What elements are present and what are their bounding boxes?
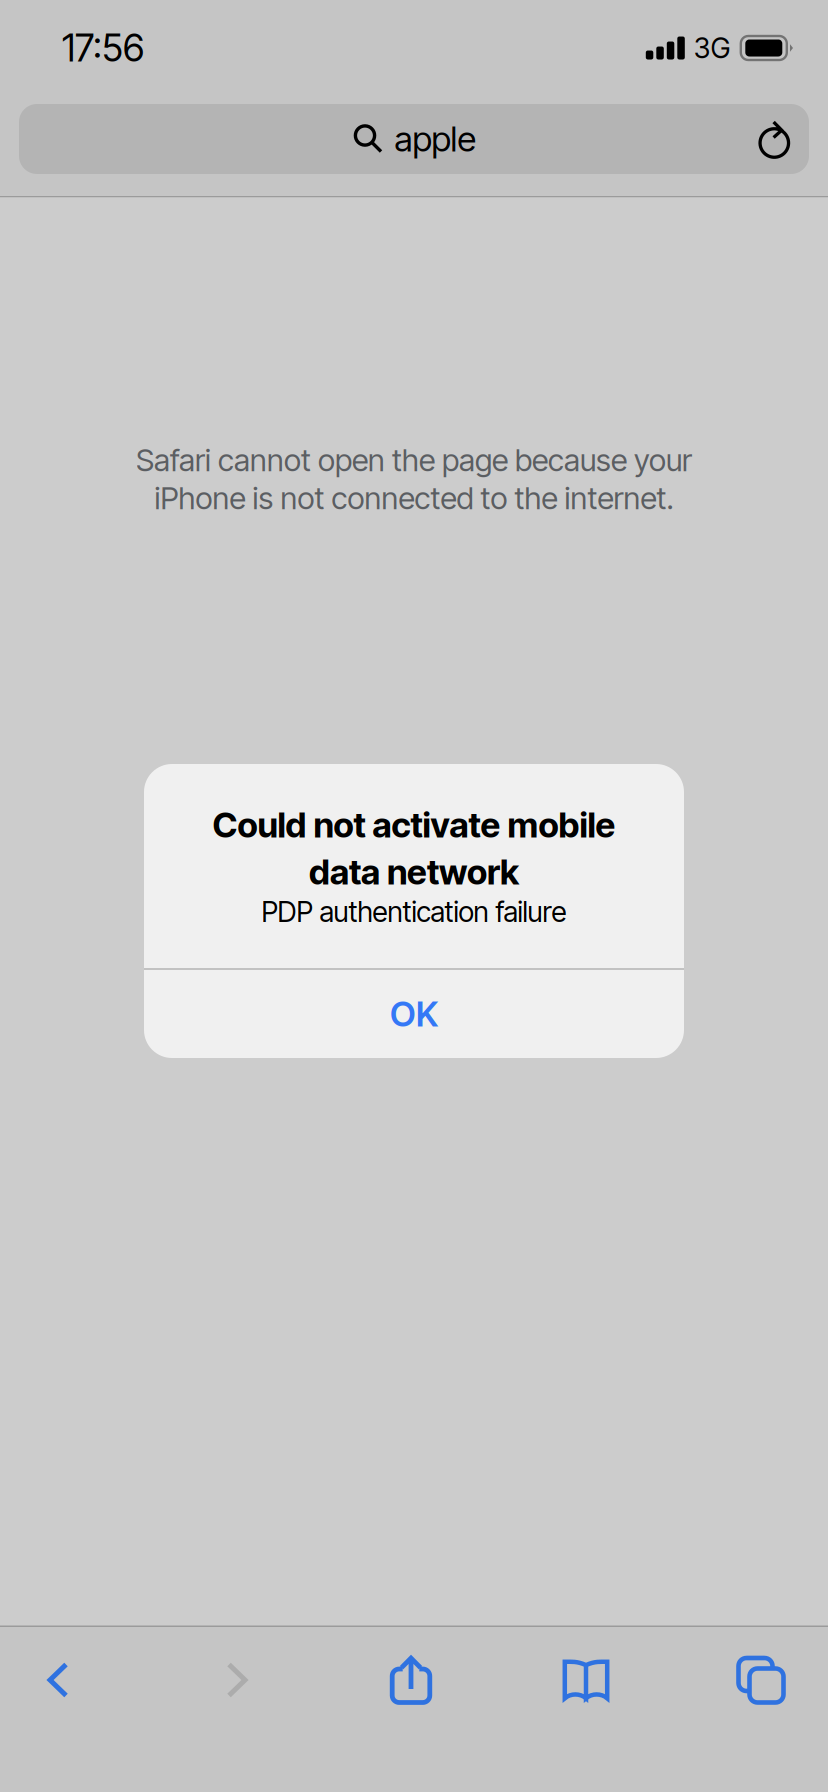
button[interactable]: Bookmarks	[528, 1630, 644, 1730]
staticText: iPhone is not connected to the internet.	[154, 480, 673, 517]
staticText: PDP authentication failure	[261, 895, 566, 929]
button[interactable]: OK	[144, 970, 684, 1058]
staticText: OK	[390, 993, 438, 1035]
staticText: apple	[394, 118, 475, 160]
staticText: Safari cannot open the page because your	[136, 441, 692, 479]
button[interactable]: Forward	[179, 1630, 295, 1730]
button[interactable]: Reload	[743, 104, 809, 174]
staticText: 3G	[694, 31, 730, 65]
staticText: data network	[309, 851, 519, 893]
staticText: 17:56	[62, 25, 144, 71]
button[interactable]: Tabs	[703, 1630, 819, 1730]
button[interactable]: Back	[0, 1630, 116, 1730]
staticText: Could not activate mobile	[212, 804, 615, 846]
button[interactable]: Share	[353, 1630, 469, 1730]
